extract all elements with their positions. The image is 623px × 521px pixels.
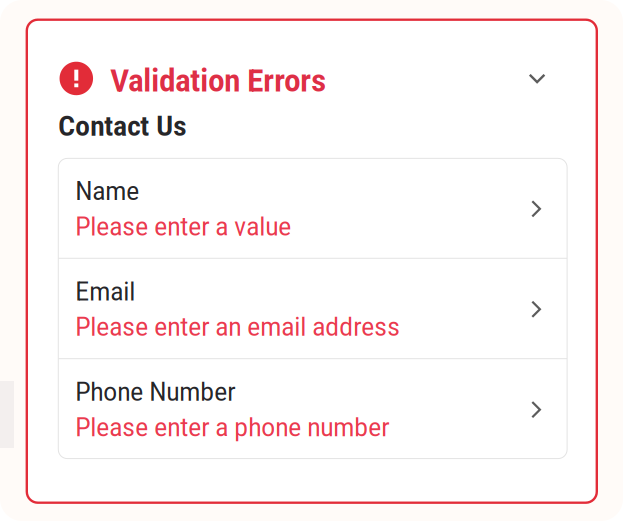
button[interactable]: Name xyxy=(58,158,567,258)
staticText: Validation Errors xyxy=(110,63,326,99)
button[interactable]: Email xyxy=(58,259,567,358)
staticText: Please enter a value xyxy=(75,211,291,242)
staticText: Email xyxy=(75,276,135,307)
staticText: Name xyxy=(75,176,139,206)
staticText: Please enter an email address xyxy=(75,312,400,342)
staticText: Please enter a phone number xyxy=(75,412,389,443)
staticText: Phone Number xyxy=(75,377,235,407)
button[interactable]: Collapse section xyxy=(520,62,554,95)
button[interactable]: Phone Number xyxy=(58,359,567,459)
staticText: Contact Us xyxy=(58,110,186,142)
